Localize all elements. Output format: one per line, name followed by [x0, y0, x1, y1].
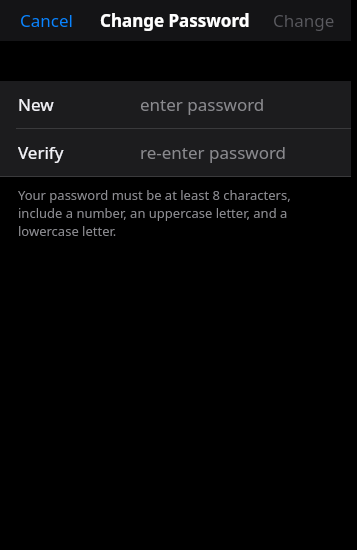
- button[interactable]: Cancel: [0, 0, 83, 41]
- staticText: Change: [273, 9, 335, 32]
- staticText: enter password: [140, 93, 265, 116]
- staticText: New: [18, 93, 54, 116]
- staticText: Change Password: [100, 9, 250, 32]
- button[interactable]: Change: [263, 0, 351, 41]
- staticText: Cancel: [20, 9, 73, 32]
- button[interactable]: New: [0, 81, 351, 128]
- staticText: re-enter password: [140, 141, 287, 164]
- staticText: Verify: [18, 141, 64, 164]
- button[interactable]: Verify: [0, 129, 351, 176]
- staticText: Your password must be at least 8 charact…: [18, 186, 327, 240]
